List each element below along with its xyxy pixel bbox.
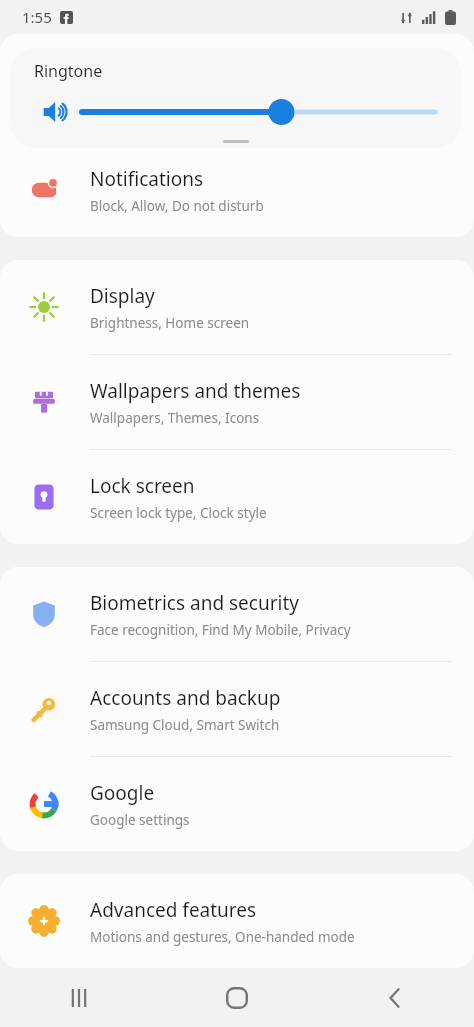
staticText: Screen lock type, Clock style	[90, 504, 267, 522]
staticText: Notifications	[90, 166, 204, 192]
staticText: Google settings	[90, 811, 190, 829]
button[interactable]: Biometrics and security	[0, 567, 474, 661]
button[interactable]: Wallpapers and themes	[0, 355, 474, 449]
button[interactable]: Home	[158, 969, 316, 1027]
button[interactable]: Mute	[36, 92, 76, 132]
staticText: Brightness, Home screen	[90, 314, 250, 332]
staticText: Block, Allow, Do not disturb	[90, 197, 264, 215]
staticText: Settings	[24, 49, 123, 84]
staticText: Accounts and backup	[90, 685, 281, 711]
staticText: Google	[90, 780, 155, 806]
button[interactable]: Back	[316, 969, 474, 1027]
staticText: Face recognition, Find My Mobile, Privac…	[90, 621, 351, 639]
button[interactable]: Lock screen	[0, 450, 474, 544]
staticText: Samsung Cloud, Smart Switch	[90, 716, 280, 734]
staticText: 1:55	[22, 7, 52, 27]
staticText: Display	[90, 283, 155, 309]
staticText: Biometrics and security	[90, 590, 300, 616]
staticText: Lock screen	[90, 473, 195, 499]
staticText: Motions and gestures, One-handed mode	[90, 928, 355, 946]
button[interactable]: Advanced features	[0, 874, 474, 968]
button[interactable]: Accounts and backup	[0, 662, 474, 756]
button[interactable]: Notifications	[0, 143, 474, 237]
staticText: Wallpapers and themes	[90, 378, 301, 404]
staticText: Ringtone	[34, 60, 103, 82]
staticText: Advanced features	[90, 897, 257, 923]
staticText: Sound mode, Ringtone, Volume	[88, 124, 282, 142]
button[interactable]: Recents	[0, 969, 158, 1027]
staticText: Wallpapers, Themes, Icons	[90, 409, 260, 427]
button[interactable]: Display	[0, 260, 474, 354]
button[interactable]: Google	[0, 757, 474, 851]
button[interactable]: Ringtone volume	[82, 97, 441, 127]
